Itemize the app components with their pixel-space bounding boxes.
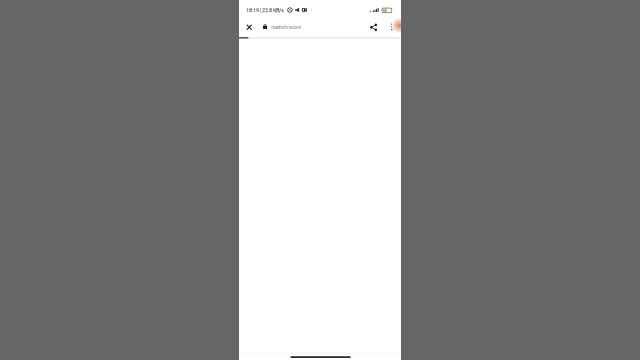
- staticText: 18:19 | 22.8 KB/s: [246, 7, 284, 13]
- button[interactable]: Share: [365, 16, 383, 38]
- button[interactable]: More options: [385, 16, 399, 38]
- staticText: mediafire.com: [271, 25, 301, 30]
- button[interactable]: Close tab: [239, 16, 259, 38]
- button[interactable]: mediafire.com: [263, 16, 365, 38]
